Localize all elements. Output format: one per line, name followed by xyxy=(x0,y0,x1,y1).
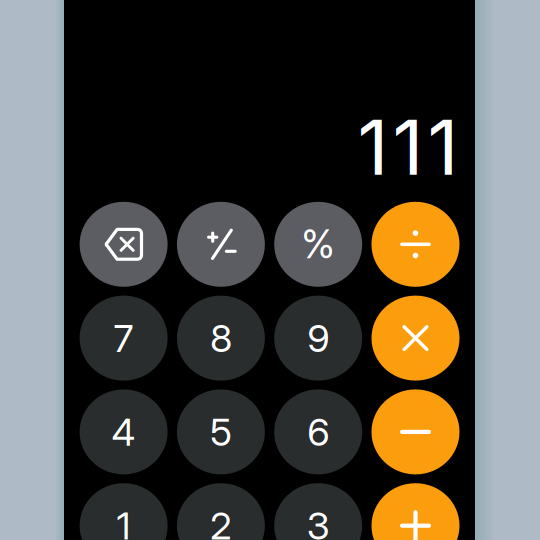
button[interactable]: 2 xyxy=(177,482,265,540)
staticText: 8 xyxy=(210,315,232,361)
staticText: 7 xyxy=(114,315,134,361)
button[interactable]: Minus xyxy=(371,388,459,476)
staticText: 6 xyxy=(307,409,329,455)
button[interactable]: 7 xyxy=(80,294,168,382)
staticText: 9 xyxy=(307,315,329,361)
button[interactable]: 5 xyxy=(177,388,265,476)
button[interactable]: 4 xyxy=(80,388,168,476)
button[interactable]: 1 xyxy=(80,482,168,540)
staticText: 1 xyxy=(117,503,131,540)
staticText: 5 xyxy=(210,409,232,455)
button[interactable]: 8 xyxy=(177,294,265,382)
button[interactable]: 6 xyxy=(274,388,362,476)
staticText: 2 xyxy=(210,503,232,540)
button[interactable]: Divide xyxy=(371,200,459,288)
staticText: 111 xyxy=(357,101,458,193)
button[interactable]: Multiply xyxy=(371,294,459,382)
button[interactable]: Percent xyxy=(274,200,362,288)
staticText: 4 xyxy=(112,409,136,455)
button[interactable]: Plus minus xyxy=(177,200,265,288)
button[interactable]: Plus xyxy=(371,482,459,540)
staticText: % xyxy=(301,221,335,268)
button[interactable]: Delete xyxy=(80,200,168,288)
button[interactable]: 3 xyxy=(274,482,362,540)
staticText: 3 xyxy=(307,503,330,540)
button[interactable]: 9 xyxy=(274,294,362,382)
